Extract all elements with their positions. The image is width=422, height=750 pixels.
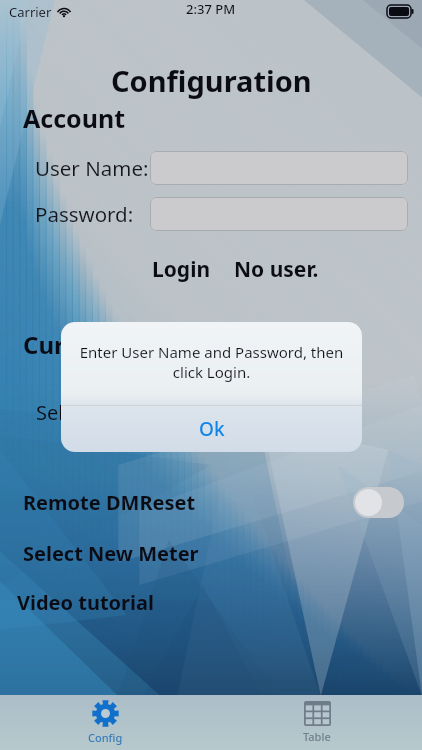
staticText: Configuration — [111, 61, 312, 100]
button[interactable]: Ok — [61, 406, 362, 452]
staticText: Table — [303, 729, 331, 744]
staticText: Login — [152, 255, 211, 284]
button[interactable]: Login — [152, 255, 211, 284]
staticText: User Name: — [35, 154, 149, 182]
button[interactable]: Toggle Remote DMReset — [353, 487, 404, 518]
staticText: 2:37 PM — [186, 0, 236, 18]
staticText: Current Meter — [23, 328, 194, 361]
staticText: No user. — [234, 255, 319, 284]
button[interactable] — [150, 151, 408, 185]
button[interactable]: Config — [0, 695, 211, 750]
staticText: Select — [36, 399, 92, 426]
staticText: Enter User Name and Password, then click… — [75, 342, 348, 382]
staticText: Ok — [199, 416, 225, 442]
button[interactable]: Select New Meter — [23, 540, 199, 567]
staticText: Carrier — [9, 3, 52, 21]
staticText: Account — [23, 101, 126, 135]
staticText: Config — [88, 730, 123, 745]
button[interactable]: Table — [211, 695, 422, 750]
button[interactable]: Remote DMReset — [23, 489, 196, 516]
staticText: Password: — [35, 200, 134, 228]
button[interactable] — [150, 197, 408, 231]
button[interactable]: Video tutorial — [17, 589, 154, 616]
